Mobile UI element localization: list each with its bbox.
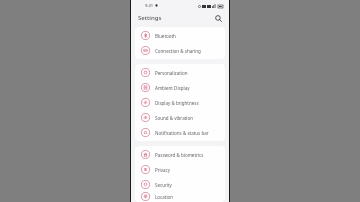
staticText: Bluetooth bbox=[155, 33, 176, 39]
button[interactable]: Privacy bbox=[135, 162, 225, 177]
button[interactable]: Personalization bbox=[135, 65, 225, 80]
button[interactable]: Connection & sharing bbox=[135, 43, 225, 58]
button[interactable]: Location bbox=[135, 192, 225, 201]
staticText: Security bbox=[155, 182, 172, 188]
button[interactable]: Bluetooth bbox=[135, 28, 225, 43]
button[interactable]: Notifications & status bar bbox=[135, 125, 225, 140]
staticText: Location bbox=[155, 194, 174, 200]
staticText: Privacy bbox=[155, 167, 171, 173]
button[interactable]: Security bbox=[135, 177, 225, 192]
staticText: 9:41 bbox=[145, 3, 153, 8]
staticText: Connection & sharing bbox=[155, 48, 201, 54]
button[interactable]: Search bbox=[213, 13, 224, 24]
staticText: Personalization bbox=[155, 70, 188, 76]
staticText: Notifications & status bar bbox=[155, 130, 209, 136]
button[interactable]: Sound & vibration bbox=[135, 110, 225, 125]
button[interactable]: Display & brightness bbox=[135, 95, 225, 110]
staticText: Settings bbox=[138, 14, 162, 22]
staticText: Password & biometrics bbox=[155, 152, 204, 158]
button[interactable]: Password & biometrics bbox=[135, 147, 225, 162]
staticText: Ambient Display bbox=[155, 85, 190, 91]
staticText: Sound & vibration bbox=[155, 115, 193, 121]
button[interactable]: Ambient Display bbox=[135, 80, 225, 95]
staticText: Display & brightness bbox=[155, 100, 199, 106]
